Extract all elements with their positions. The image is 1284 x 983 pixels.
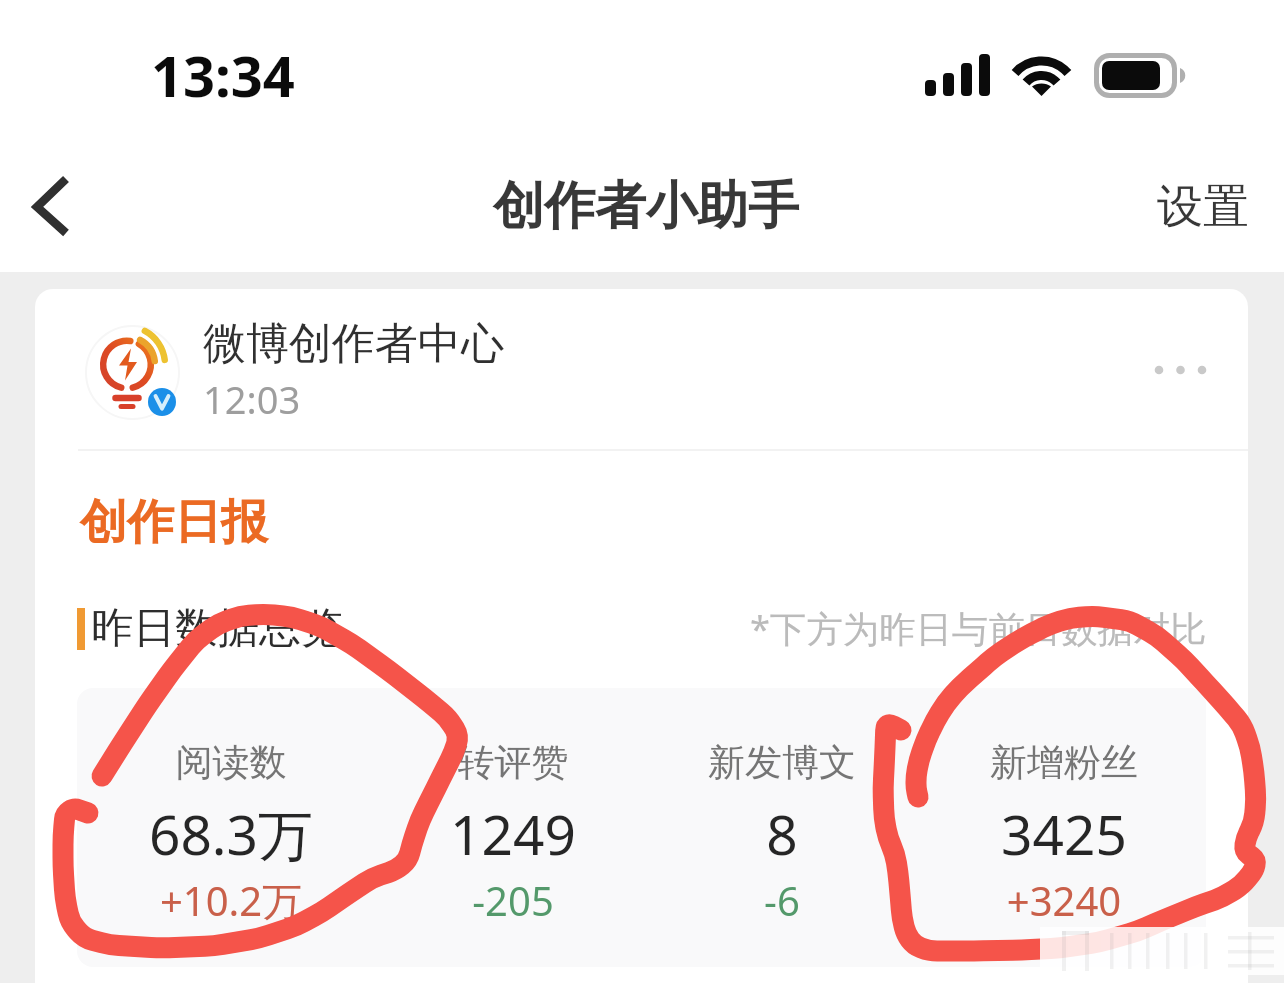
staticText: *下方为昨日与前日数据对比 [750, 603, 1207, 653]
button[interactable]: 创作者小助手 [493, 174, 799, 238]
staticText: -205 [373, 873, 653, 927]
staticText: 68.3万 [91, 796, 371, 871]
staticText: +10.2万 [91, 873, 371, 928]
button[interactable] [373, 688, 653, 967]
staticText: 1249 [373, 796, 653, 871]
staticText: 12:03 [203, 373, 301, 425]
staticText: 13:34 [151, 37, 295, 113]
staticText: 创作者小助手 [493, 174, 799, 238]
staticText: 昨日数据总览 [91, 602, 343, 655]
button[interactable]: Back [8, 160, 100, 252]
staticText: +3240 [924, 873, 1204, 927]
staticText: -6 [642, 873, 922, 927]
staticText: 转评赞 [373, 739, 653, 786]
staticText: 新增粉丝 [924, 739, 1204, 786]
staticText: 创作日报 [80, 493, 268, 552]
staticText: 3425 [924, 796, 1204, 871]
button[interactable] [91, 688, 371, 967]
staticText: 新发博文 [642, 739, 922, 786]
button[interactable]: More options [1125, 339, 1235, 399]
button[interactable] [642, 688, 922, 967]
button[interactable]: 微博创作者中心 avatar [85, 325, 180, 420]
staticText: 8 [642, 796, 922, 871]
staticText: 阅读数 [91, 739, 371, 786]
button[interactable]: 设置 [1157, 178, 1249, 236]
staticText: 设置 [1157, 178, 1249, 236]
button[interactable] [924, 688, 1204, 967]
staticText: 微博创作者中心 [203, 317, 504, 371]
